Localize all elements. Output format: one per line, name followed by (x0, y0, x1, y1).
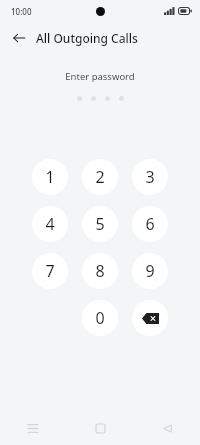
button[interactable]: Recents (20, 415, 46, 441)
button[interactable]: 1 (32, 159, 68, 195)
staticText: Enter password (65, 70, 135, 83)
staticText: 7 (45, 260, 55, 282)
staticText: All Outgoing Calls (36, 30, 138, 46)
button[interactable]: 0 (82, 300, 118, 336)
staticText: 8 (95, 260, 105, 282)
button[interactable]: 6 (132, 206, 168, 242)
staticText: 9 (145, 260, 155, 282)
button[interactable]: 2 (82, 159, 118, 195)
staticText: 3 (145, 166, 155, 188)
button[interactable]: 3 (132, 159, 168, 195)
button[interactable]: Backspace (132, 300, 168, 336)
button[interactable]: 7 (32, 253, 68, 289)
staticText: 4 (45, 213, 55, 235)
staticText: 0 (95, 307, 105, 329)
staticText: 6 (145, 213, 155, 235)
button[interactable]: Home (87, 415, 113, 441)
staticText: 1 (45, 166, 55, 188)
button[interactable]: 5 (82, 206, 118, 242)
button[interactable]: Back (154, 415, 180, 441)
staticText: 2 (95, 166, 105, 188)
staticText: 10:00 (11, 6, 32, 17)
button[interactable]: Back (6, 25, 32, 51)
button[interactable]: 4 (32, 206, 68, 242)
button[interactable]: 9 (132, 253, 168, 289)
staticText: 5 (95, 213, 105, 235)
button[interactable]: 8 (82, 253, 118, 289)
